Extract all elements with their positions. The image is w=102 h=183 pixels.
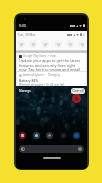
button[interactable]: Clear all: [71, 88, 85, 94]
button[interactable]: Phone: [33, 132, 40, 139]
staticText: 9:30: [19, 23, 26, 28]
staticText: Google Play Store • now: [23, 54, 56, 58]
button[interactable]: Search: [19, 145, 84, 153]
staticText: Update your apps to get the latest featu…: [19, 58, 84, 71]
button[interactable]: Quick setting: [41, 40, 49, 48]
staticText: Wireless charging • 1h 20 min left: [19, 83, 65, 86]
staticText: Battery 84%: [19, 78, 39, 82]
button[interactable]: Quick setting: [17, 40, 25, 48]
button[interactable]: Chrome: [73, 132, 80, 139]
button[interactable]: Quick setting: [78, 40, 86, 48]
button[interactable]: Quick setting: [54, 40, 62, 48]
staticText: Sun, 20 Mar: [18, 33, 36, 37]
button[interactable]: Camera: [60, 132, 67, 139]
button[interactable]: App: [72, 94, 81, 103]
staticText: Manage: [19, 89, 31, 93]
button[interactable]: Google Play Store • now: [17, 53, 86, 71]
button[interactable]: Quick setting: [66, 40, 74, 48]
staticText: Clear all: [72, 89, 84, 93]
button[interactable]: Gmail: [19, 132, 26, 139]
button[interactable]: Play Store: [46, 132, 53, 139]
button[interactable]: Manage: [18, 88, 32, 94]
staticText: Android System • Charging: [23, 73, 60, 77]
button[interactable]: Android System • Charging: [17, 72, 86, 86]
button[interactable]: Quick setting: [29, 40, 37, 48]
